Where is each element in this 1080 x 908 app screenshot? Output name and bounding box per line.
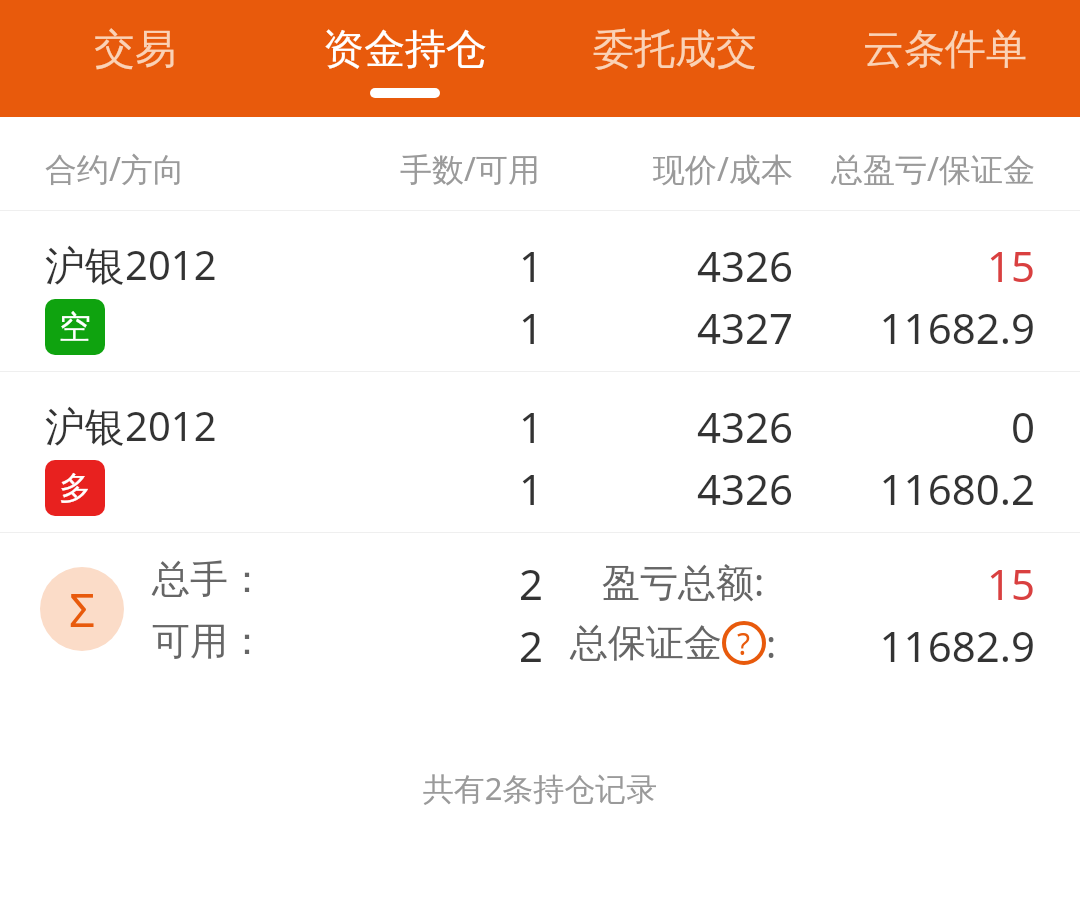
staticText: 合约/方向: [45, 147, 185, 191]
staticText: 云条件单: [863, 24, 1027, 76]
button[interactable]: 沪银2012: [0, 372, 1080, 532]
staticText: 现价/成本: [0, 147, 793, 191]
staticText: 11682.9: [0, 299, 1035, 356]
button[interactable]: 沪银2012: [0, 211, 1080, 371]
staticText: 1: [0, 299, 543, 356]
staticText: 可用：: [152, 617, 266, 665]
staticText: 空: [59, 307, 91, 347]
staticText: 1: [0, 398, 543, 455]
staticText: 4326: [0, 460, 793, 517]
staticText: 交易: [94, 24, 176, 76]
button[interactable]: 委托成交: [540, 0, 810, 117]
staticText: 2: [0, 555, 543, 612]
button[interactable]: 云条件单: [810, 0, 1080, 117]
staticText: 4326: [0, 398, 793, 455]
other: Summary: [40, 567, 124, 651]
staticText: ?: [737, 623, 751, 664]
staticText: 1: [0, 460, 543, 517]
staticText: 手数/可用: [0, 147, 540, 191]
staticText: 11682.9: [0, 617, 1035, 674]
staticText: 4326: [0, 237, 793, 294]
staticText: 沪银2012: [45, 398, 217, 453]
staticText: 1: [0, 237, 543, 294]
staticText: 资金持仓: [323, 24, 487, 76]
button[interactable]: 交易: [0, 0, 270, 117]
staticText: 盈亏总额:: [602, 555, 765, 607]
staticText: 15: [0, 237, 1035, 294]
staticText: 总手：: [152, 555, 266, 603]
staticText: 多: [59, 468, 91, 508]
button[interactable]: 资金持仓: [270, 0, 540, 117]
staticText: 总盈亏/保证金: [0, 147, 1035, 191]
staticText: 4327: [0, 299, 793, 356]
staticText: 15: [0, 555, 1035, 612]
staticText: 委托成交: [593, 24, 757, 76]
staticText: 总保证金: [570, 619, 722, 667]
staticText: :: [766, 617, 777, 669]
button[interactable]: Help: [722, 621, 766, 665]
staticText: 共有2条持仓记录: [0, 767, 1080, 809]
staticText: Σ: [69, 578, 96, 641]
staticText: 0: [0, 398, 1035, 455]
staticText: 沪银2012: [45, 237, 217, 292]
staticText: 2: [0, 617, 543, 674]
staticText: 11680.2: [0, 460, 1035, 517]
